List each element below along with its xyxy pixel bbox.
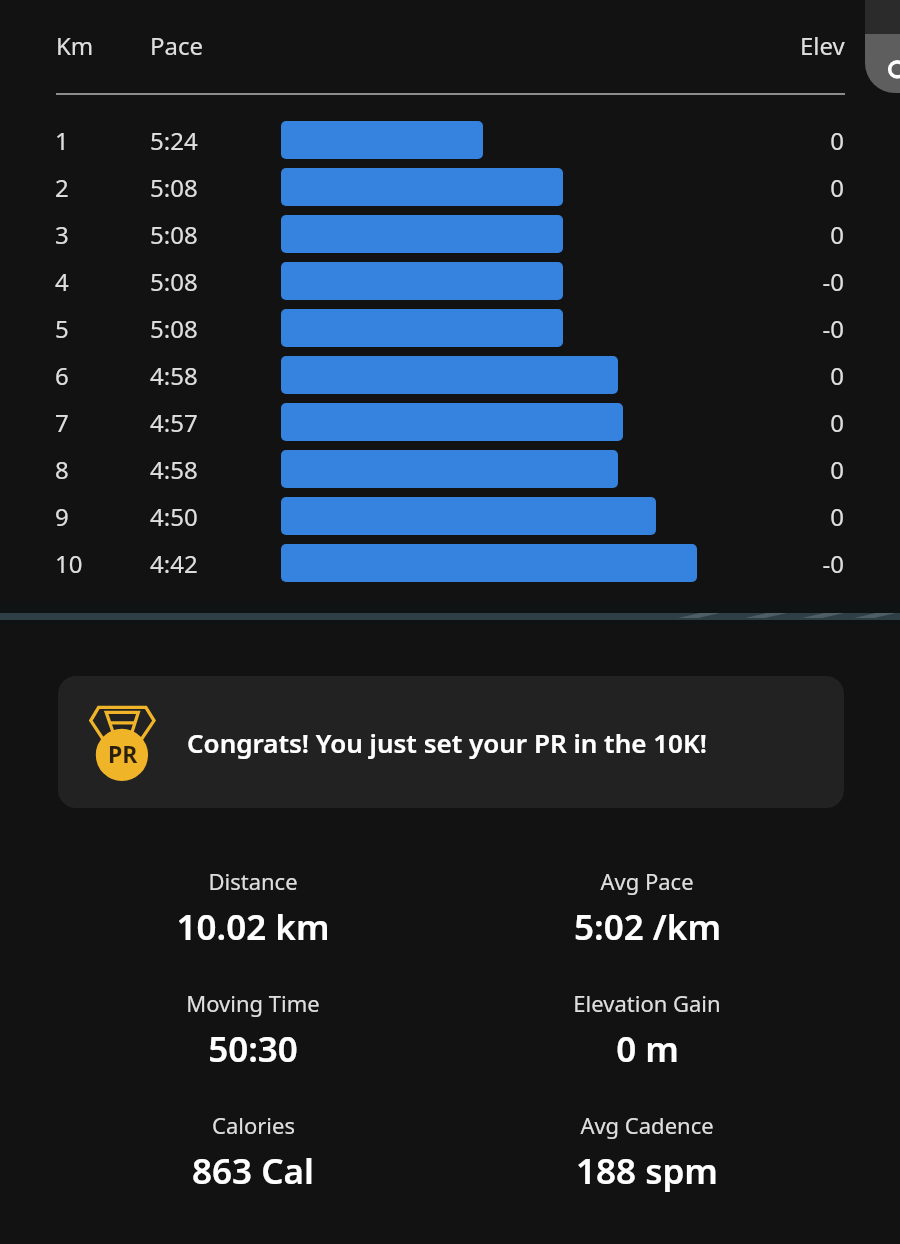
staticText: Congrats! You just set your PR in the 10… xyxy=(187,725,707,760)
button[interactable]: 2 xyxy=(0,168,900,206)
staticText: 4:58 xyxy=(150,453,198,486)
staticText: 6 xyxy=(55,359,69,392)
staticText: 4:57 xyxy=(150,406,198,439)
staticText: Elev xyxy=(800,29,845,62)
staticText: 0 xyxy=(830,124,844,157)
staticText: 5:24 xyxy=(150,124,198,157)
button[interactable]: Avg Pace xyxy=(467,866,827,966)
staticText: 50:30 xyxy=(208,1025,298,1073)
staticText: 10.02 km xyxy=(176,903,330,951)
staticText: 188 spm xyxy=(576,1147,718,1195)
staticText: 5:08 xyxy=(150,218,198,251)
staticText: 4:42 xyxy=(150,547,198,580)
staticText: 3 xyxy=(55,218,69,251)
staticText: Calories xyxy=(212,1110,295,1140)
staticText: Km xyxy=(56,29,94,62)
button[interactable]: Moving Time xyxy=(73,988,433,1088)
button[interactable]: More options xyxy=(865,34,900,93)
staticText: Avg Pace xyxy=(600,866,694,896)
staticText: 0 xyxy=(830,218,844,251)
staticText: 863 Cal xyxy=(192,1147,314,1195)
button[interactable]: 6 xyxy=(0,356,900,394)
button[interactable]: 9 xyxy=(0,497,900,535)
button[interactable]: 1 xyxy=(0,121,900,159)
staticText: 8 xyxy=(55,453,69,486)
staticText: 5:08 xyxy=(150,265,198,298)
staticText: Pace xyxy=(150,29,204,62)
staticText: PR xyxy=(108,738,138,769)
staticText: 7 xyxy=(55,406,69,439)
button[interactable]: Elevation Gain xyxy=(467,988,827,1088)
staticText: Avg Cadence xyxy=(580,1110,714,1140)
staticText: Elevation Gain xyxy=(573,988,721,1018)
staticText: 1 xyxy=(55,124,69,157)
staticText: 4 xyxy=(55,265,69,298)
button[interactable]: Avg Cadence xyxy=(467,1110,827,1210)
staticText: Distance xyxy=(208,866,298,896)
staticText: 4:50 xyxy=(150,500,198,533)
button[interactable]: 4 xyxy=(0,262,900,300)
staticText: 5 xyxy=(55,312,69,345)
staticText: 2 xyxy=(55,171,69,204)
staticText: 0 xyxy=(830,171,844,204)
button[interactable]: Calories xyxy=(73,1110,433,1210)
staticText: 0 m xyxy=(616,1025,679,1073)
staticText: 0 xyxy=(830,500,844,533)
staticText: 9 xyxy=(55,500,69,533)
staticText: 5:08 xyxy=(150,312,198,345)
staticText: -0 xyxy=(822,312,844,345)
staticText: -0 xyxy=(822,265,844,298)
button[interactable]: 10 xyxy=(0,544,900,582)
staticText: 0 xyxy=(830,359,844,392)
staticText: 4:58 xyxy=(150,359,198,392)
button[interactable]: 3 xyxy=(0,215,900,253)
button[interactable]: 8 xyxy=(0,450,900,488)
button[interactable]: 7 xyxy=(0,403,900,441)
staticText: 0 xyxy=(830,406,844,439)
staticText: -0 xyxy=(822,547,844,580)
staticText: 5:02 /km xyxy=(574,903,721,951)
button[interactable]: PR xyxy=(58,676,844,808)
button[interactable]: 5 xyxy=(0,309,900,347)
button[interactable]: Distance xyxy=(73,866,433,966)
staticText: 10 xyxy=(55,547,83,580)
staticText: 0 xyxy=(830,453,844,486)
staticText: 5:08 xyxy=(150,171,198,204)
staticText: Moving Time xyxy=(186,988,320,1018)
